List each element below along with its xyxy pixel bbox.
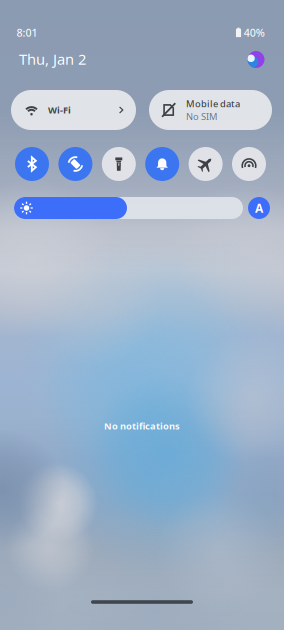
staticText: 40% (244, 25, 265, 40)
button[interactable]: Auto rotate (58, 147, 92, 181)
button[interactable]: Wi-Fi (11, 90, 136, 130)
button[interactable]: Notifications (145, 147, 179, 181)
staticText: Wi-Fi (48, 104, 71, 116)
button[interactable]: Bluetooth (15, 147, 49, 181)
staticText: Mobile data (186, 97, 240, 110)
staticText: No SIM (186, 110, 217, 123)
button[interactable]: Mobile data (149, 90, 272, 130)
staticText: Thu, Jan 2 (19, 49, 86, 69)
staticText: A (255, 200, 263, 216)
staticText: No notifications (104, 420, 180, 432)
button[interactable]: Flashlight (102, 147, 136, 181)
button[interactable]: User account (247, 51, 264, 68)
button[interactable]: Airplane mode (189, 147, 223, 181)
button[interactable]: Brightness (14, 197, 243, 219)
staticText: 8:01 (16, 25, 37, 40)
button[interactable]: Hotspot (232, 147, 266, 181)
button[interactable]: Auto brightness (248, 197, 270, 219)
